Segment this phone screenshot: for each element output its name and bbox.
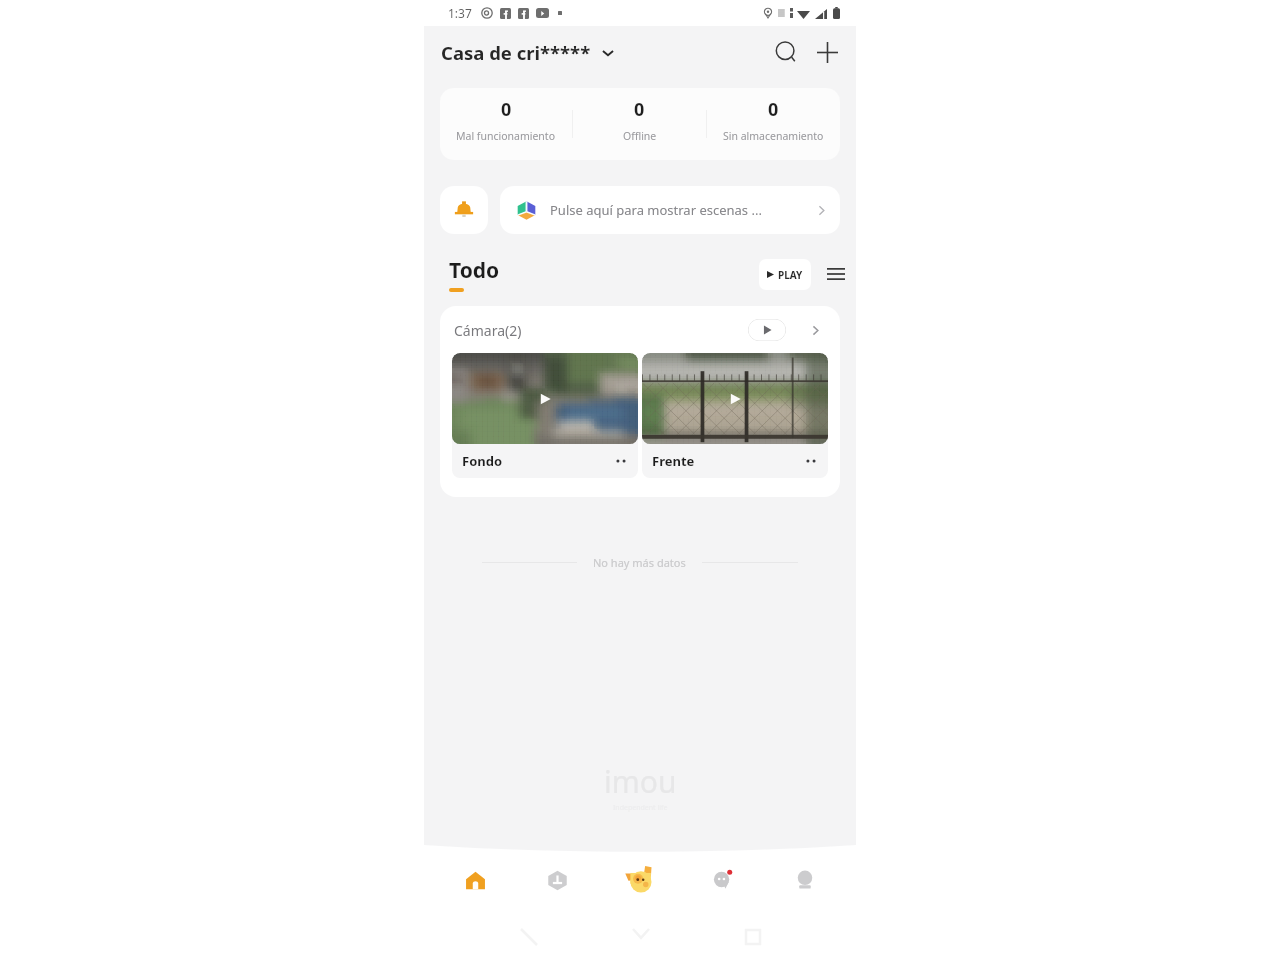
staticText: Offline bbox=[623, 129, 657, 143]
staticText: imou bbox=[604, 761, 677, 802]
button[interactable]: Add bbox=[810, 35, 844, 69]
button[interactable]: Search bbox=[769, 35, 803, 69]
button[interactable]: Todo bbox=[449, 256, 500, 292]
button[interactable]: 0 bbox=[573, 88, 706, 160]
staticText: PLAY bbox=[778, 268, 803, 282]
staticText: Frente bbox=[652, 452, 695, 470]
button[interactable]: Fondo bbox=[452, 353, 638, 478]
button[interactable]: Frente bbox=[642, 353, 828, 478]
button[interactable]: PLAY bbox=[759, 259, 811, 290]
button[interactable]: 0 bbox=[707, 88, 840, 160]
button[interactable]: 0 bbox=[440, 88, 572, 160]
button[interactable]: Home bbox=[443, 855, 507, 905]
button[interactable]: Profile bbox=[773, 855, 837, 905]
staticText: No hay más datos bbox=[593, 555, 686, 570]
staticText: Sin almacenamiento bbox=[723, 129, 824, 143]
staticText: Mal funcionamiento bbox=[456, 129, 556, 143]
button[interactable]: Devices bbox=[525, 855, 589, 905]
button[interactable]: Play all bbox=[748, 319, 786, 341]
staticText: Cámara(2) bbox=[454, 321, 522, 340]
button[interactable]: Pulse aquí para mostrar escenas ... bbox=[500, 186, 840, 234]
staticText: Fondo bbox=[462, 452, 503, 470]
staticText: Pulse aquí para mostrar escenas ... bbox=[550, 201, 762, 219]
staticText: 0 bbox=[634, 97, 645, 122]
staticText: 1:37 bbox=[448, 5, 472, 21]
button[interactable]: Assistant bbox=[608, 855, 672, 905]
button[interactable]: Messages bbox=[691, 855, 755, 905]
staticText: 0 bbox=[501, 97, 512, 122]
staticText: 0 bbox=[768, 97, 779, 122]
button[interactable]: More cameras bbox=[804, 319, 826, 341]
button[interactable]: Casa de cri***** bbox=[440, 34, 615, 71]
button[interactable]: Notifications bbox=[440, 186, 488, 234]
button[interactable]: Menu bbox=[820, 258, 852, 290]
staticText: Todo bbox=[449, 256, 500, 285]
staticText: Casa de cri***** bbox=[441, 40, 591, 65]
